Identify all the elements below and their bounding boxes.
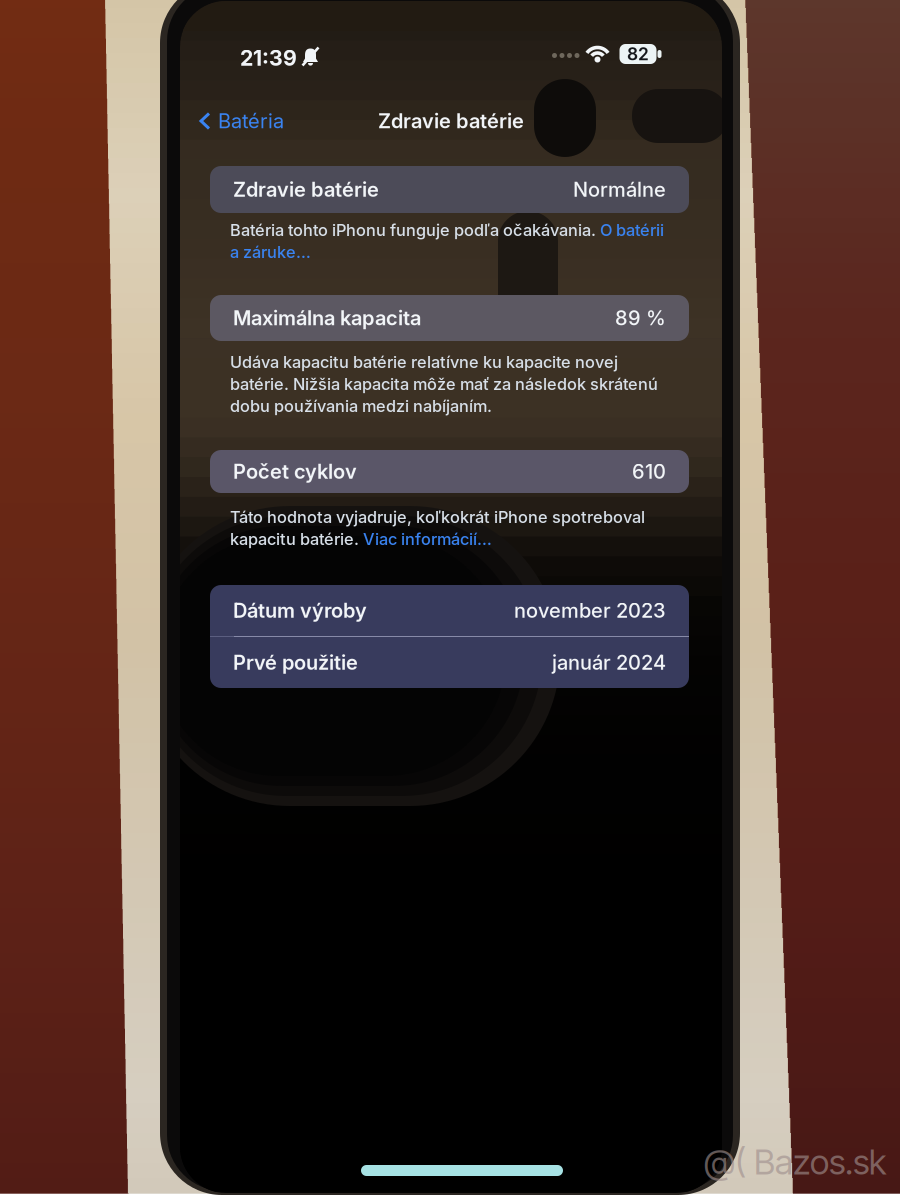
staticText: Počet cyklov — [233, 459, 357, 484]
staticText: 610 — [632, 459, 666, 484]
button[interactable]: Zdravie batérie — [210, 166, 689, 213]
staticText: kapacitu batérie. — [230, 529, 363, 549]
button[interactable]: Batéria — [199, 105, 284, 137]
staticText: Udáva kapacitu batérie relatívne ku kapa… — [230, 352, 618, 372]
staticText: Dátum výroby — [233, 598, 367, 623]
staticText: Batéria — [218, 109, 284, 133]
staticText: Normálne — [573, 177, 666, 202]
staticText: batérie. Nižšia kapacita môže mať za nás… — [230, 374, 658, 394]
staticText: dobu používania medzi nabíjaním. — [230, 396, 492, 416]
button[interactable]: Maximálna kapacita — [210, 295, 689, 341]
staticText: január 2024 — [552, 650, 666, 675]
staticText: @( Bazos.sk — [704, 1141, 886, 1183]
staticText: Batéria tohto iPhonu funguje podľa očaká… — [230, 220, 600, 240]
staticText: O batérii — [600, 220, 664, 240]
staticText: 89 % — [615, 306, 666, 330]
staticText: Zdravie batérie — [378, 109, 524, 133]
staticText: Maximálna kapacita — [233, 306, 421, 330]
staticText: Táto hodnota vyjadruje, koľkokrát iPhone… — [230, 507, 645, 527]
staticText: Zdravie batérie — [233, 177, 379, 202]
staticText: a záruke… — [230, 242, 311, 262]
staticText: Viac informácií… — [363, 529, 492, 549]
staticText: november 2023 — [514, 598, 666, 623]
staticText: 82 — [627, 43, 649, 64]
button[interactable]: Dátum výroby — [210, 585, 689, 636]
staticText: Prvé použitie — [233, 650, 358, 675]
button[interactable]: Prvé použitie — [210, 637, 689, 688]
button[interactable]: Počet cyklov — [210, 450, 689, 493]
staticText: 21:39 — [240, 45, 297, 71]
